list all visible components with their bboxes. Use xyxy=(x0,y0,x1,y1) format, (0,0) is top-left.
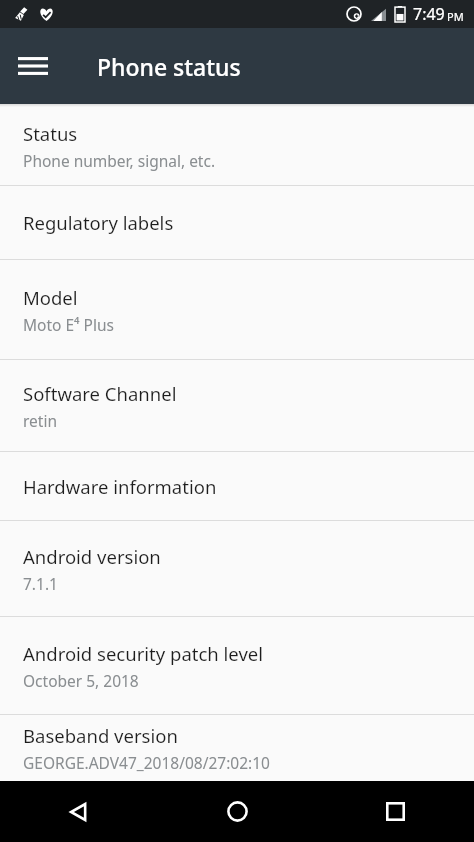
button[interactable]: Status xyxy=(0,107,474,185)
button[interactable]: Hardware information xyxy=(0,452,474,520)
staticText: retin xyxy=(23,410,58,431)
button[interactable]: Back xyxy=(0,781,158,842)
staticText: Baseband version xyxy=(23,723,178,748)
staticText: Phone status xyxy=(97,51,241,82)
staticText: Android security patch level xyxy=(23,641,264,666)
staticText: Phone number, signal, etc. xyxy=(23,150,216,171)
staticText: Hardware information xyxy=(23,474,217,499)
button[interactable]: Regulatory labels xyxy=(0,186,474,259)
staticText: Status xyxy=(23,121,78,146)
button[interactable]: Open navigation drawer xyxy=(9,42,57,90)
staticText: PM xyxy=(447,9,464,24)
button[interactable]: Model xyxy=(0,260,474,359)
staticText: Regulatory labels xyxy=(23,210,174,235)
staticText: 7:49 xyxy=(413,3,445,25)
staticText: Model xyxy=(23,285,78,310)
staticText: 7.1.1 xyxy=(23,573,58,594)
staticText: Software Channel xyxy=(23,381,177,406)
staticText: October 5, 2018 xyxy=(23,670,139,691)
button[interactable]: Android security patch level xyxy=(0,617,474,714)
button[interactable]: Home xyxy=(158,781,316,842)
staticText: GEORGE.ADV47_2018/08/27:02:10 xyxy=(23,752,270,773)
button[interactable]: Software Channel xyxy=(0,360,474,451)
button[interactable]: Baseband version xyxy=(0,715,474,781)
staticText: Android version xyxy=(23,544,161,569)
button[interactable]: Recent apps xyxy=(316,781,474,842)
button[interactable]: Android version xyxy=(0,521,474,616)
staticText: Moto E⁴ Plus xyxy=(23,314,114,335)
